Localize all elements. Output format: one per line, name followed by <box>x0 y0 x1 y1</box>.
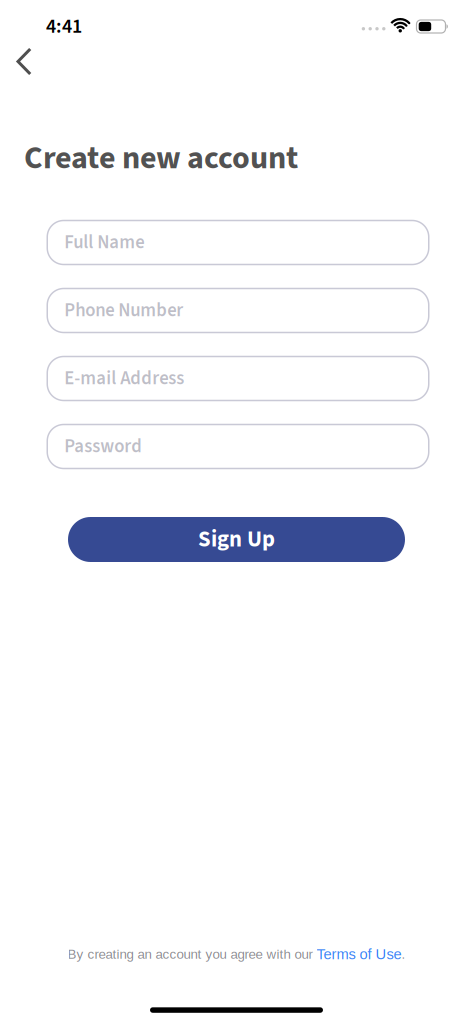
staticText: By creating an account you agree with ou… <box>67 947 316 962</box>
staticText: Create new account <box>24 136 298 180</box>
staticText: Sign Up <box>198 524 275 555</box>
staticText: Password <box>64 433 142 459</box>
button[interactable] <box>0 43 46 80</box>
button[interactable]: Sign Up <box>68 517 405 562</box>
button[interactable]: Terms of Use <box>316 946 401 962</box>
staticText: . <box>401 947 405 962</box>
button[interactable]: Full Name <box>47 220 429 264</box>
button[interactable]: Phone Number <box>47 288 429 332</box>
staticText: Phone Number <box>64 297 183 323</box>
staticText: E-mail Address <box>64 365 184 391</box>
staticText: Terms of Use <box>316 946 401 962</box>
staticText: Full Name <box>64 229 144 255</box>
staticText: 4:41 <box>46 12 82 40</box>
button[interactable]: E-mail Address <box>47 356 429 400</box>
button[interactable]: Password <box>47 424 429 468</box>
